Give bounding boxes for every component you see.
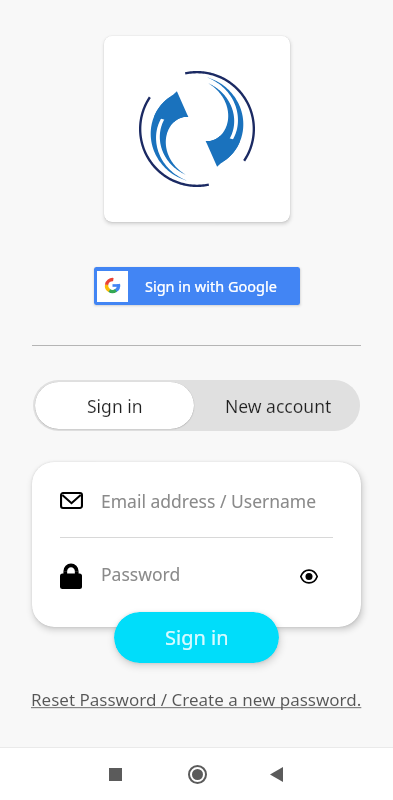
button[interactable]: Reset Password / Create a new password. [31, 688, 362, 711]
button[interactable]: Show password [296, 563, 322, 589]
button[interactable]: Recent apps [91, 750, 139, 798]
button[interactable]: Sign in [35, 382, 194, 429]
button[interactable]: Email address / Username [60, 484, 333, 517]
button[interactable]: Sign in with Google [94, 267, 300, 305]
staticText: Reset Password / Create a new password. [31, 688, 362, 711]
staticText: Password [101, 562, 181, 586]
staticText: Email address / Username [101, 489, 317, 513]
staticText: Sign in [165, 624, 229, 651]
staticText: Sign in with Google [145, 276, 277, 296]
button[interactable]: New account [196, 380, 360, 431]
button[interactable]: Sign in [114, 612, 279, 663]
staticText: Sign in [87, 394, 143, 418]
button[interactable]: Back [252, 750, 300, 798]
button[interactable]: Home [173, 750, 221, 798]
staticText: New account [225, 394, 332, 418]
